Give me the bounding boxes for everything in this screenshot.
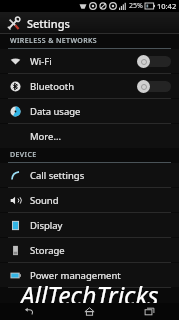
button[interactable]: Data usage (0, 99, 179, 123)
button[interactable]: Home (59, 303, 119, 320)
staticText: Display (30, 219, 63, 232)
button[interactable]: Wi-Fi (0, 49, 179, 73)
button[interactable]: Power management (0, 263, 179, 287)
staticText: Sound (30, 194, 59, 207)
staticText: Call settings (30, 169, 85, 182)
staticText: Data usage (30, 105, 81, 118)
staticText: WIRELESS & NETWORKS (10, 36, 98, 46)
button[interactable]: Bluetooth (0, 74, 179, 98)
staticText: More... (30, 130, 62, 143)
button[interactable]: More... (0, 124, 179, 148)
staticText: 10:42 (157, 1, 177, 11)
staticText: AllTechTricks (20, 278, 159, 312)
button[interactable]: Storage (0, 238, 179, 262)
button[interactable]: Call settings (0, 163, 179, 187)
staticText: Bluetooth (30, 80, 75, 93)
button[interactable]: Toggle (137, 80, 171, 93)
staticText: 25% (129, 1, 143, 11)
button[interactable]: Recents (119, 303, 179, 320)
staticText: Storage (30, 244, 65, 257)
button[interactable]: Back (0, 303, 59, 320)
button[interactable]: Display (0, 213, 179, 237)
staticText: DEVICE (10, 150, 37, 160)
staticText: Power management (30, 269, 121, 282)
staticText: Wi-Fi (30, 55, 52, 68)
button[interactable]: Toggle (137, 55, 171, 68)
staticText: Settings (27, 16, 70, 31)
button[interactable]: Sound (0, 188, 179, 212)
